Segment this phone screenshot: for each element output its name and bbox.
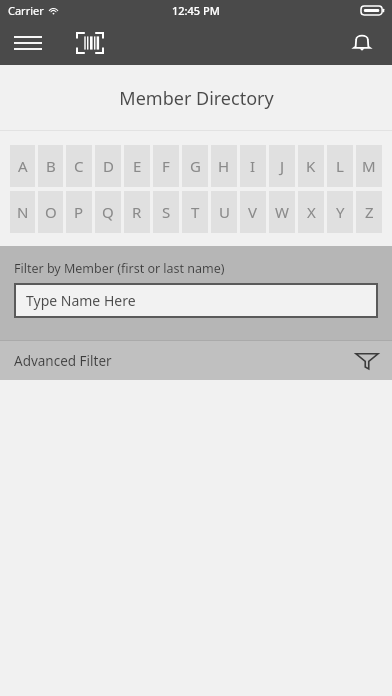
button[interactable]: Advanced Filter (0, 341, 392, 380)
button[interactable]: D (95, 145, 121, 187)
button[interactable]: T (182, 191, 208, 233)
staticText: D (103, 156, 114, 176)
button[interactable]: H (211, 145, 237, 187)
button[interactable]: U (211, 191, 237, 233)
staticText: K (306, 156, 316, 176)
staticText: F (162, 156, 170, 176)
button[interactable]: Notifications (340, 21, 384, 65)
staticText: T (191, 202, 200, 222)
button[interactable]: S (153, 191, 179, 233)
staticText: V (248, 202, 258, 222)
button[interactable]: Type Name Here (14, 283, 378, 318)
button[interactable]: B (38, 145, 63, 187)
button[interactable]: O (38, 191, 63, 233)
staticText: 12:45 PM (172, 3, 220, 18)
staticText: Q (102, 202, 114, 222)
staticText: Filter by Member (first or last name) (14, 260, 225, 277)
button[interactable]: N (10, 191, 35, 233)
button[interactable]: E (124, 145, 150, 187)
button[interactable]: R (124, 191, 150, 233)
button[interactable]: P (66, 191, 92, 233)
staticText: S (162, 202, 171, 222)
staticText: O (45, 202, 57, 222)
button[interactable]: A (10, 145, 35, 187)
button[interactable]: I (240, 145, 266, 187)
button[interactable]: V (240, 191, 266, 233)
staticText: Y (336, 202, 345, 222)
staticText: N (17, 202, 29, 222)
staticText: Z (365, 202, 374, 222)
button[interactable]: Y (327, 191, 353, 233)
staticText: U (219, 202, 230, 222)
button[interactable]: F (153, 145, 179, 187)
staticText: X (307, 202, 316, 222)
staticText: B (46, 156, 56, 176)
staticText: R (132, 202, 142, 222)
button[interactable]: Menu (6, 21, 50, 65)
staticText: Type Name Here (26, 291, 136, 310)
staticText: C (74, 156, 84, 176)
button[interactable]: L (327, 145, 353, 187)
button[interactable]: M (356, 145, 382, 187)
staticText: H (218, 156, 230, 176)
button[interactable]: C (66, 145, 92, 187)
staticText: Advanced Filter (14, 352, 112, 370)
button[interactable]: Z (356, 191, 382, 233)
staticText: A (18, 156, 28, 176)
button[interactable]: Q (95, 191, 121, 233)
button[interactable]: G (182, 145, 208, 187)
staticText: J (280, 156, 285, 176)
button[interactable]: Scan barcode (68, 21, 112, 65)
staticText: W (275, 202, 289, 222)
staticText: Member Directory (119, 86, 274, 111)
button[interactable]: J (269, 145, 295, 187)
staticText: E (133, 156, 142, 176)
staticText: P (74, 202, 84, 222)
button[interactable]: K (298, 145, 324, 187)
staticText: L (336, 156, 344, 176)
staticText: I (250, 156, 256, 176)
button[interactable]: W (269, 191, 295, 233)
staticText: M (362, 156, 376, 176)
staticText: Carrier (8, 3, 44, 18)
button[interactable]: X (298, 191, 324, 233)
staticText: G (190, 156, 201, 176)
